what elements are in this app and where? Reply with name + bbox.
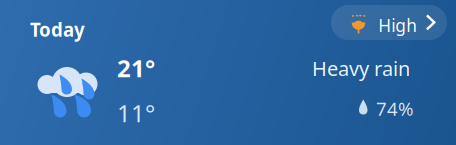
staticText: Today [30,17,85,42]
staticText: 21° [117,52,155,84]
staticText: Heavy rain [312,55,410,82]
staticText: 74% [376,96,414,121]
button[interactable]: High [331,5,447,40]
staticText: High [378,14,417,37]
staticText: 11° [117,97,155,129]
